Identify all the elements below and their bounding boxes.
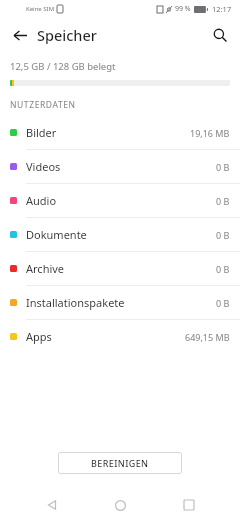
staticText: Bilder	[26, 125, 57, 140]
staticText: Archive	[26, 261, 65, 276]
button[interactable]: BEREINIGEN	[58, 452, 182, 474]
staticText: NUTZERDATEN	[10, 99, 76, 111]
staticText: 0 B	[216, 263, 230, 275]
button[interactable]: Back	[6, 21, 34, 49]
staticText: Audio	[26, 193, 57, 208]
staticText: 19,16 MB	[190, 127, 230, 139]
button[interactable]: Recents	[172, 490, 206, 520]
staticText: 0 B	[216, 229, 230, 241]
staticText: Installationspakete	[26, 295, 125, 310]
staticText: Apps	[26, 329, 52, 344]
staticText: Speicher	[37, 25, 97, 45]
staticText: 99 %	[175, 4, 191, 14]
button[interactable]: Apps	[0, 320, 240, 353]
button[interactable]: Installationspakete	[0, 286, 240, 319]
staticText: 0 B	[216, 161, 230, 173]
staticText: Videos	[26, 159, 61, 174]
button[interactable]: Home	[103, 490, 137, 520]
staticText: BEREINIGEN	[91, 457, 149, 469]
staticText: 0 B	[216, 297, 230, 309]
button[interactable]: Archive	[0, 252, 240, 285]
staticText: 0 B	[216, 195, 230, 207]
staticText: 649,15 MB	[185, 331, 230, 343]
button[interactable]: Search	[206, 21, 234, 49]
staticText: Dokumente	[26, 227, 87, 242]
button[interactable]: Audio	[0, 184, 240, 217]
button[interactable]: Videos	[0, 150, 240, 183]
staticText: Keine SIM	[26, 5, 55, 13]
staticText: 12,5 GB / 128 GB belegt	[10, 60, 116, 73]
button[interactable]: Bilder	[0, 116, 240, 149]
button[interactable]: Dokumente	[0, 218, 240, 251]
button[interactable]: Back	[35, 490, 69, 520]
staticText: 12:17	[212, 4, 232, 14]
